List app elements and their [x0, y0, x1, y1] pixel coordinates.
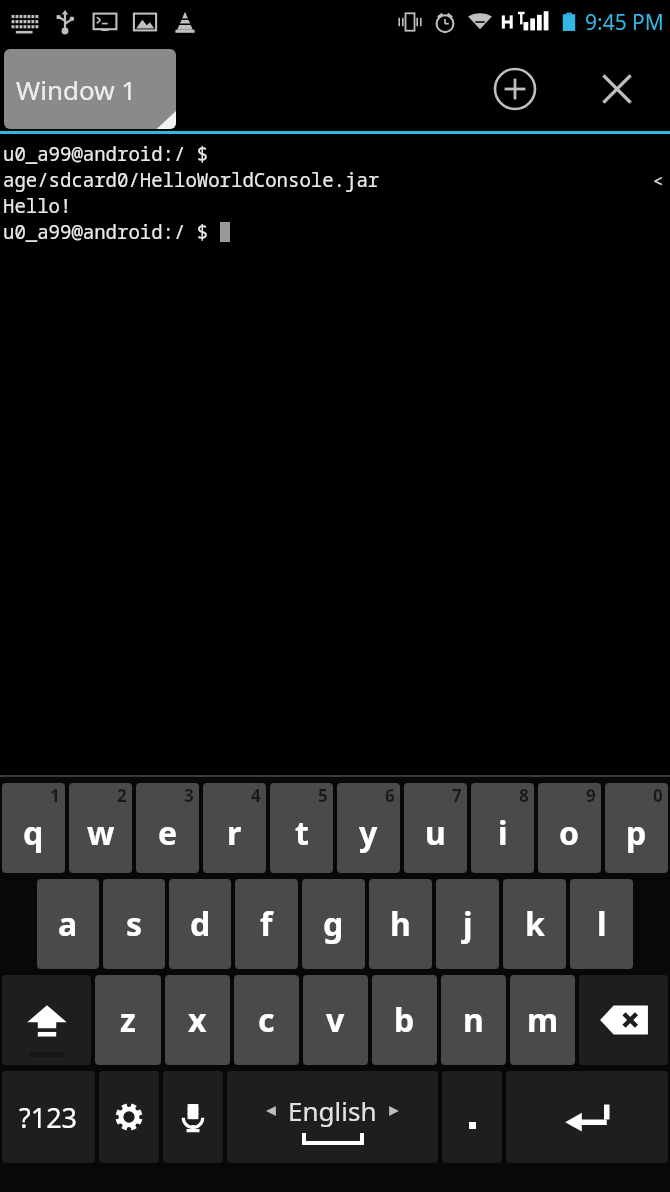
button[interactable]: New window [486, 60, 544, 118]
staticText: ?123 [19, 1099, 78, 1136]
staticText: o [559, 811, 580, 855]
staticText: a [58, 902, 78, 946]
staticText: 7 [452, 784, 462, 807]
staticText: d [190, 902, 211, 946]
button[interactable]: j [436, 879, 499, 969]
staticText: English [288, 1093, 377, 1128]
staticText: w [87, 811, 115, 855]
button[interactable]: v [303, 975, 368, 1065]
staticText: 8 [519, 784, 529, 807]
button[interactable]: 5 [270, 783, 333, 873]
button[interactable]: 9 [538, 783, 601, 873]
button[interactable]: n [441, 975, 506, 1065]
button[interactable]: b [372, 975, 437, 1065]
button[interactable]: m [510, 975, 575, 1065]
button[interactable]: x [165, 975, 230, 1065]
button[interactable]: 7 [404, 783, 467, 873]
staticText: Window 1 [16, 72, 137, 107]
staticText: 3 [184, 784, 194, 807]
staticText: 0 [653, 784, 663, 807]
button[interactable]: a [37, 879, 99, 969]
staticText: u0_a99@android:/ $ [3, 141, 209, 167]
button[interactable]: l [570, 879, 633, 969]
staticText: < [653, 169, 664, 192]
staticText: 9:45 PM [585, 8, 664, 37]
button[interactable]: d [169, 879, 231, 969]
staticText: e [158, 811, 178, 855]
staticText: n [463, 998, 484, 1042]
staticText: i [498, 811, 508, 855]
button[interactable]: s [103, 879, 165, 969]
staticText: x [188, 998, 207, 1042]
button[interactable]: 0 [605, 783, 668, 873]
staticText: v [326, 998, 345, 1042]
staticText: p [626, 811, 647, 855]
staticText: 2 [117, 784, 127, 807]
button[interactable]: Settings [99, 1071, 159, 1163]
staticText: m [527, 998, 559, 1042]
staticText: g [323, 902, 344, 946]
button[interactable]: 3 [136, 783, 199, 873]
button[interactable]: 8 [471, 783, 534, 873]
staticText: Hello! [3, 193, 72, 219]
button[interactable]: ?123 [2, 1071, 95, 1163]
staticText: s [126, 902, 143, 946]
button[interactable]: 6 [337, 783, 400, 873]
staticText: 5 [318, 784, 328, 807]
button[interactable]: k [503, 879, 566, 969]
staticText: b [394, 998, 415, 1042]
button[interactable]: Close window [588, 60, 646, 118]
button[interactable]: Delete [579, 975, 668, 1065]
button[interactable]: u0_a99@android:/ $ [0, 134, 670, 775]
staticText: y [359, 811, 378, 855]
staticText: 6 [385, 784, 395, 807]
staticText: 1 [50, 784, 60, 807]
button[interactable]: 1 [2, 783, 65, 873]
staticText: c [258, 998, 275, 1042]
staticText: t [295, 811, 309, 855]
staticText: 4 [251, 784, 261, 807]
staticText: u [425, 811, 446, 855]
button[interactable]: Space [227, 1071, 438, 1163]
button[interactable]: Shift [2, 975, 91, 1065]
button[interactable]: h [369, 879, 432, 969]
staticText: h [390, 902, 411, 946]
staticText: u0_a99@android:/ $ [3, 219, 220, 245]
staticText: k [525, 902, 545, 946]
button[interactable] [442, 1071, 502, 1163]
button[interactable]: f [235, 879, 298, 969]
button[interactable]: Window 1 [4, 49, 176, 129]
button[interactable]: 2 [69, 783, 132, 873]
button[interactable]: 4 [203, 783, 266, 873]
staticText: 9 [586, 784, 596, 807]
staticText: age/sdcard0/HelloWorldConsole.jar [3, 167, 380, 193]
button[interactable]: z [95, 975, 161, 1065]
staticText: r [227, 811, 242, 855]
button[interactable]: Voice input [163, 1071, 223, 1163]
staticText: f [260, 902, 273, 946]
staticText: j [463, 902, 473, 946]
button[interactable]: Enter [506, 1071, 668, 1163]
staticText: z [120, 998, 136, 1042]
staticText: l [597, 902, 607, 946]
button[interactable]: g [302, 879, 365, 969]
staticText: q [23, 811, 44, 855]
button[interactable]: c [234, 975, 299, 1065]
